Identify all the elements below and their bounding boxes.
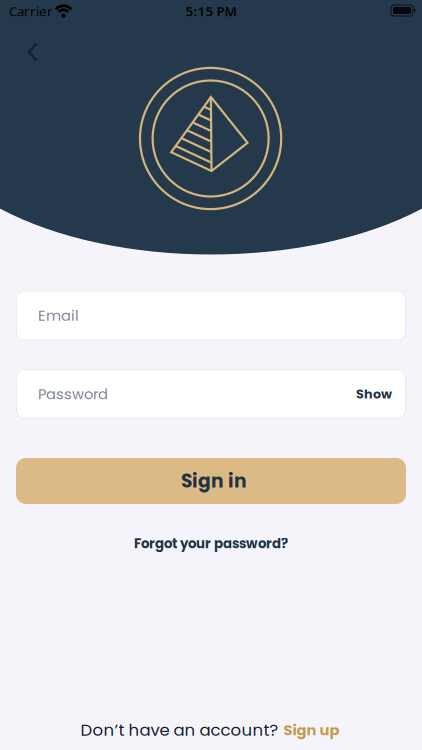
button[interactable]: Sign in — [16, 458, 406, 504]
staticText: Email — [38, 305, 79, 326]
staticText: Sign up — [283, 720, 339, 740]
button[interactable]: Sign up — [283, 720, 339, 740]
staticText: Don’t have an account? — [80, 718, 278, 741]
staticText: Show — [356, 385, 392, 403]
staticText: Forgot your password? — [134, 534, 288, 553]
staticText: Carrier — [9, 2, 53, 20]
staticText: Sign in — [181, 468, 247, 494]
staticText: 5:15 PM — [185, 2, 236, 20]
button[interactable]: Forgot your password? — [134, 534, 288, 553]
button[interactable]: Email — [16, 290, 406, 340]
button[interactable]: Back — [15, 34, 51, 70]
button[interactable]: Show — [356, 385, 392, 403]
button[interactable]: Password — [16, 369, 406, 419]
staticText: Password — [38, 384, 108, 404]
